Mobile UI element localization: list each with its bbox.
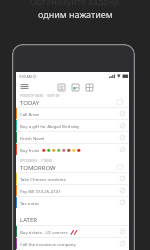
staticText: Buy fruits [20, 147, 40, 153]
button[interactable]: Add task [115, 161, 125, 171]
button[interactable]: Complete task [119, 175, 126, 182]
button[interactable]: Complete task [119, 134, 126, 141]
button[interactable]: Finish Novel [16, 132, 129, 143]
staticText: TOMORROW [20, 164, 56, 172]
button[interactable]: Complete task [119, 110, 126, 117]
button[interactable]: Complete task [119, 187, 126, 194]
staticText: Call the insurance company [20, 241, 76, 247]
staticText: Finish Novel [20, 135, 45, 141]
staticText: Buy tickets - U2 concert [20, 229, 68, 235]
button[interactable]: Tax notes [16, 197, 129, 208]
button[interactable]: Complete task [119, 228, 126, 235]
staticText: Tax notes [20, 200, 40, 206]
staticText: UPCOMING · 7 TASKS [20, 159, 53, 163]
button[interactable]: Complete task [119, 199, 126, 206]
staticText: Pay Bill 374-26-4747 [20, 188, 61, 194]
button[interactable]: Board view [70, 82, 80, 92]
button[interactable]: Pay Bill 374-26-4747 [16, 185, 129, 196]
button[interactable]: Grid view [84, 82, 94, 92]
button[interactable]: Buy tickets - U2 concert [16, 226, 129, 237]
button[interactable]: Buy a gift for Abigail Birthday [16, 120, 129, 131]
staticText: Call Brian [20, 111, 40, 117]
staticText: одним нажатием [38, 8, 113, 20]
button[interactable]: List view [56, 82, 66, 92]
staticText: TODAY [20, 99, 40, 107]
button[interactable]: Complete task [119, 240, 126, 247]
button[interactable]: Buy fruits [16, 144, 129, 155]
staticText: 9:00 AM [19, 74, 32, 79]
button[interactable]: Take Chinese medicine [16, 173, 129, 184]
button[interactable]: Add task [115, 96, 125, 106]
staticText: Buy a gift for Abigail Birthday [20, 123, 80, 129]
button[interactable]: Complete task [119, 122, 126, 129]
staticText: PRIORITY TASKS · SORT BY [20, 94, 60, 98]
staticText: Организуйте задачи [30, 0, 120, 7]
button[interactable]: Complete task [119, 146, 126, 153]
button[interactable]: Call the insurance company [16, 238, 129, 249]
staticText: LATER [20, 216, 37, 224]
button[interactable]: Call Brian [16, 108, 129, 119]
button[interactable]: Menu [19, 81, 30, 92]
staticText: Take Chinese medicine [20, 176, 66, 182]
